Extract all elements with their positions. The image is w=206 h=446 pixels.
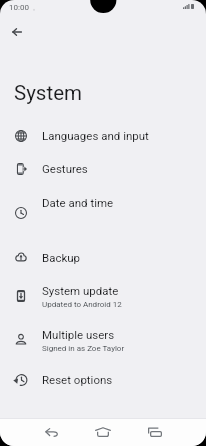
button[interactable]: Languages and input (0, 119, 206, 152)
staticText: Languages and input (42, 129, 149, 142)
staticText: Date and time (42, 196, 114, 209)
button[interactable]: Date and time (0, 186, 206, 240)
button[interactable]: Reset options (0, 363, 206, 397)
button[interactable]: Home (90, 419, 116, 445)
staticText: System update (42, 284, 119, 297)
staticText: Updated to Android 12 (42, 300, 122, 309)
button[interactable]: System update (0, 274, 206, 317)
staticText: Multiple users (42, 328, 115, 341)
staticText: Backup (42, 251, 81, 264)
staticText: System (14, 81, 83, 105)
button[interactable]: Multiple users (0, 316, 206, 362)
staticText: Signed in as Zoe Taylor (42, 344, 125, 353)
button[interactable]: Back (38, 419, 64, 445)
staticText: Reset options (42, 373, 113, 386)
button[interactable]: Navigate up (4, 19, 30, 45)
staticText: Gestures (42, 162, 88, 175)
button[interactable]: Gestures (0, 152, 206, 185)
button[interactable]: Recent apps (142, 419, 168, 445)
staticText: 10:00 (9, 3, 29, 12)
button[interactable]: Backup (0, 240, 206, 274)
